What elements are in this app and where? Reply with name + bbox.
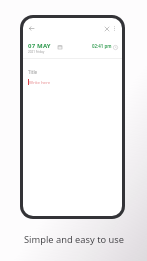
button[interactable]: More options [109,23,120,34]
staticText: Write here [29,79,51,85]
staticText: 2021 Friday [28,50,45,54]
staticText: 07 MAY [28,42,51,50]
staticText: Simple and easy to use [24,233,124,246]
staticText: Title [28,69,38,75]
staticText: 02:41 pm [92,43,112,49]
button[interactable]: Back [26,23,37,34]
button[interactable]: Close [101,23,112,34]
